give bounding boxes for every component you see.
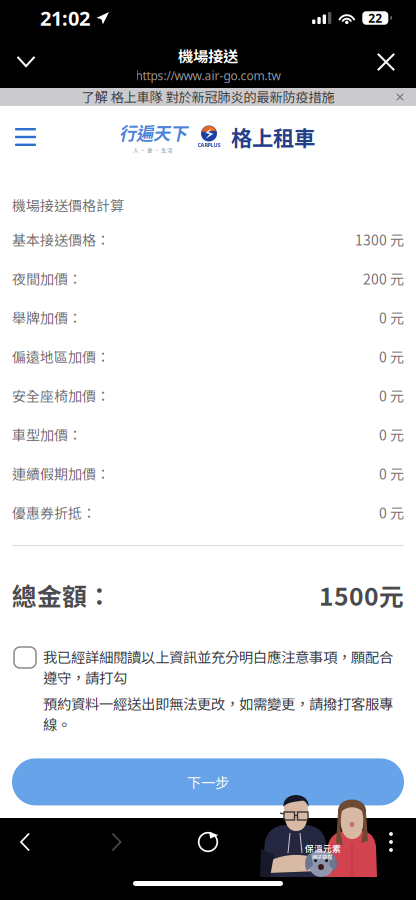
button[interactable]: 下一步 [12, 758, 404, 805]
button[interactable]: Back [0, 818, 50, 866]
staticText: 安全座椅加價： [12, 385, 110, 406]
staticText: 1500元 [319, 577, 404, 613]
staticText: 22 [368, 10, 382, 26]
button[interactable]: Dismiss banner [391, 88, 409, 105]
button[interactable]: Agree checkbox [12, 646, 36, 668]
button[interactable]: Dismiss [0, 36, 52, 88]
staticText: 連續假期加價： [12, 463, 110, 484]
staticText: 0 元 [379, 463, 404, 484]
staticText: 0 元 [379, 346, 404, 367]
staticText: 機場接送 [178, 44, 238, 67]
button[interactable]: Forward [91, 818, 141, 866]
staticText: https://www.air-go.com.tw [135, 68, 280, 83]
staticText: 21:02 [40, 5, 90, 31]
button[interactable]: Menu [0, 106, 51, 168]
staticText: 0 元 [379, 424, 404, 445]
button[interactable]: 了解 格上車隊 對於新冠肺炎的最新防疫措施 [0, 87, 416, 107]
staticText: 偏遠地區加價： [12, 346, 110, 367]
button[interactable]: Reload [183, 818, 233, 866]
staticText: 預約資料一經送出即無法更改，如需變更，請撥打客服專線。 [43, 693, 393, 734]
staticText: 人 · 車 · 生活 [133, 146, 173, 154]
staticText: 200 元 [363, 268, 404, 289]
staticText: 夜間加價： [12, 268, 82, 289]
staticText: 了解 格上車隊 對於新冠肺炎的最新防疫措施 [81, 87, 334, 106]
staticText: 機場接送價格計算 [12, 195, 124, 215]
staticText: 總金額： [12, 577, 112, 613]
staticText: 1300 元 [355, 229, 404, 250]
staticText: 優惠券折抵： [12, 502, 96, 523]
staticText: CARPLUS [197, 141, 220, 149]
staticText: 我已經詳細閱讀以上資訊並充分明白應注意事項，願配合遵守，請打勾 [43, 646, 393, 688]
staticText: 下一步 [187, 771, 229, 792]
button[interactable]: More [366, 818, 416, 866]
staticText: 0 元 [379, 502, 404, 523]
staticText: 0 元 [379, 307, 404, 328]
staticText: 車型加價： [12, 424, 82, 445]
button[interactable]: Close [360, 36, 412, 88]
staticText: 格上租車 [231, 122, 315, 152]
staticText: 0 元 [379, 385, 404, 406]
staticText: 基本接送價格： [12, 229, 110, 250]
staticText: 舉牌加價： [12, 307, 82, 328]
staticText: 親子穿搭 [312, 853, 332, 861]
staticText: 保溫元素 [305, 842, 341, 854]
staticText: 行遍天下 [119, 120, 187, 145]
